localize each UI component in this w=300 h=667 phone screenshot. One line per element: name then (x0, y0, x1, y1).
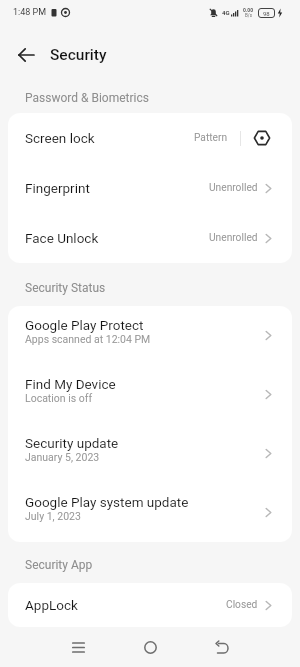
staticText: B/s (245, 13, 252, 18)
staticText: 4G (222, 9, 230, 16)
button[interactable]: Screen lock (8, 113, 292, 163)
staticText: Google Play Protect (25, 317, 144, 333)
staticText: 0.00 (243, 7, 254, 13)
staticText: Fingerprint (25, 180, 90, 196)
button[interactable]: AppLock (8, 583, 292, 627)
staticText: Unenrolled (209, 182, 258, 194)
staticText: 98 (263, 10, 270, 17)
staticText: Google Play system update (25, 494, 189, 510)
button[interactable] (130, 629, 170, 665)
button[interactable] (58, 629, 98, 665)
staticText: Find My Device (25, 376, 116, 392)
staticText: Closed (226, 599, 258, 611)
staticText: Apps scanned at 12:04 PM (25, 333, 151, 345)
staticText: July 1, 2023 (25, 510, 81, 522)
button[interactable] (8, 41, 44, 69)
staticText: Security (50, 46, 107, 64)
button[interactable]: Face Unlock (8, 213, 292, 263)
staticText: Unenrolled (209, 232, 258, 244)
button[interactable]: Google Play Protect (8, 306, 292, 365)
button[interactable]: Fingerprint (8, 163, 292, 213)
staticText: AppLock (25, 597, 78, 613)
staticText: Password & Biometrics (25, 91, 149, 105)
button[interactable]: Google Play system update (8, 483, 292, 542)
button[interactable]: Find My Device (8, 365, 292, 424)
staticText: Location is off (25, 392, 93, 404)
staticText: Pattern (194, 132, 228, 144)
staticText: 1:48 PM (13, 7, 47, 18)
button[interactable] (202, 629, 242, 665)
staticText: Security Status (25, 281, 106, 295)
staticText: Security update (25, 435, 119, 451)
staticText: Security App (25, 558, 93, 572)
staticText: Screen lock (25, 130, 95, 146)
staticText: Face Unlock (25, 230, 99, 246)
button[interactable]: Security update (8, 424, 292, 483)
staticText: January 5, 2023 (25, 451, 100, 463)
